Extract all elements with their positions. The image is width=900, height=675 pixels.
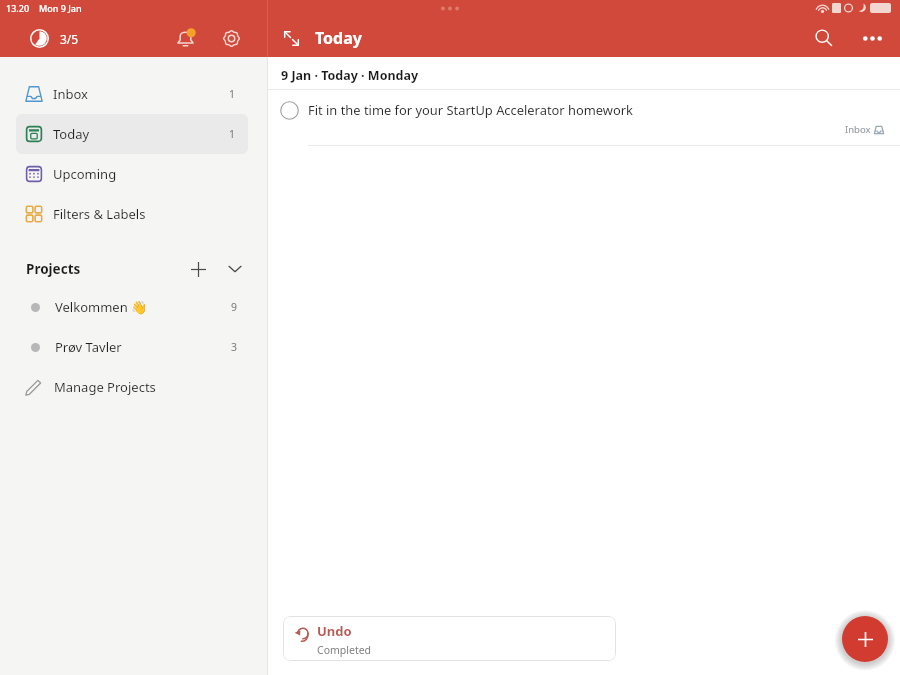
button[interactable]: Velkommen 👋: [0, 287, 267, 327]
staticText: Today: [53, 125, 90, 143]
button[interactable]: Filters & Labels: [16, 194, 248, 234]
staticText: Inbox: [53, 85, 88, 103]
button[interactable]: Add project: [185, 256, 211, 282]
staticText: 1: [229, 87, 236, 101]
staticText: 9: [231, 300, 238, 314]
staticText: Today: [315, 27, 362, 49]
staticText: 3/5: [60, 31, 79, 47]
staticText: 9 Jan · Today · Monday: [281, 67, 419, 84]
staticText: 1: [229, 127, 236, 141]
button[interactable]: More options: [857, 23, 887, 53]
staticText: Velkommen 👋: [55, 298, 148, 316]
staticText: Prøv Tavler: [55, 338, 122, 356]
staticText: Manage Projects: [54, 378, 156, 396]
button[interactable]: Prøv Tavler: [0, 327, 267, 367]
staticText: Filters & Labels: [53, 205, 146, 223]
staticText: Completed: [317, 643, 372, 657]
button[interactable]: Manage Projects: [0, 367, 267, 407]
button[interactable]: Today: [16, 114, 248, 154]
button[interactable]: Collapse panel: [277, 24, 305, 52]
staticText: Inbox: [845, 123, 871, 136]
staticText: 3: [231, 340, 238, 354]
staticText: Fit in the time for your StartUp Acceler…: [308, 101, 633, 119]
button[interactable]: Search: [809, 23, 839, 53]
button[interactable]: 3/5: [28, 27, 81, 50]
button[interactable]: Add task: [842, 616, 888, 662]
button[interactable]: Upcoming: [16, 154, 248, 194]
staticText: Upcoming: [53, 165, 117, 183]
button[interactable]: Settings: [217, 24, 245, 52]
staticText: Mon 9 Jan: [39, 2, 82, 14]
button[interactable]: Fit in the time for your StartUp Acceler…: [268, 90, 900, 146]
staticText: 13.20: [6, 2, 30, 14]
staticText: Projects: [26, 260, 81, 278]
button[interactable]: Collapse projects: [222, 256, 248, 282]
button[interactable]: Notifications: [171, 24, 199, 52]
staticText: Undo: [317, 622, 352, 640]
button[interactable]: Undo: [283, 616, 616, 661]
button[interactable]: Inbox: [16, 74, 248, 114]
